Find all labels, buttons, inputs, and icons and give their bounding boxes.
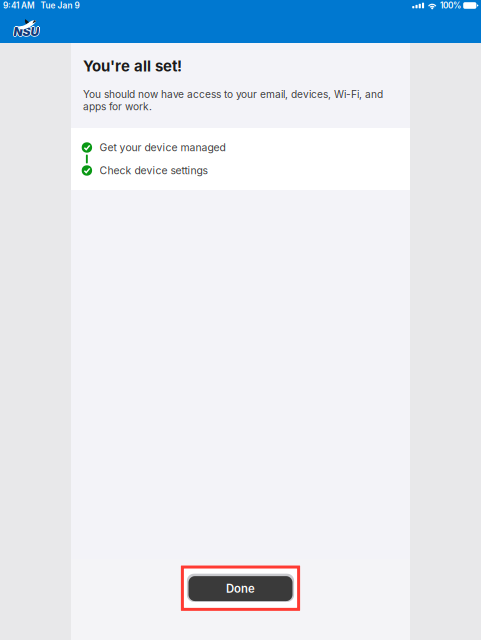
staticText: Check device settings — [99, 164, 207, 177]
staticText: NSU — [13, 24, 39, 39]
staticText: You're all set! — [83, 57, 182, 75]
button[interactable]: Done — [181, 565, 300, 611]
staticText: NSU — [14, 24, 40, 39]
staticText: NSU — [12, 24, 38, 39]
staticText: You should now have access to your email… — [83, 88, 383, 113]
staticText: 100% — [440, 0, 461, 10]
staticText: Done — [226, 582, 255, 595]
staticText: NSU — [13, 25, 39, 40]
staticText: 9:41 AM — [3, 0, 35, 10]
staticText: Tue Jan 9 — [40, 0, 79, 10]
staticText: NSU — [13, 23, 39, 38]
staticText: Get your device managed — [99, 141, 225, 154]
